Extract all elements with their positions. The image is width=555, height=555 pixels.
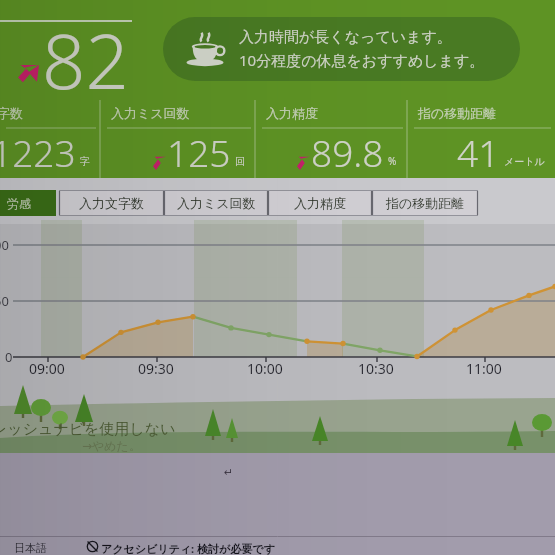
staticText: 09:30 <box>138 359 174 378</box>
staticText: 11:00 <box>466 359 502 378</box>
staticText: →やめた。 <box>82 438 141 453</box>
button[interactable]: 指の移動距離 <box>372 190 478 216</box>
staticText: 41 <box>457 127 500 177</box>
staticText: 字数 <box>0 105 23 121</box>
staticText: 89.8 <box>311 127 384 177</box>
staticText: 1223 <box>0 127 76 177</box>
staticText: 00 <box>0 236 9 254</box>
other: Accessibility <box>86 540 99 553</box>
staticText: 10分程度の休息をおすすめします。 <box>239 50 485 70</box>
button[interactable]: アクセシビリティ: 検討が必要です <box>101 541 275 555</box>
staticText: レッシュナビを使用しない <box>0 420 176 439</box>
button[interactable]: 入力ミス回数 <box>164 190 268 216</box>
staticText: 入力ミス回数 <box>111 105 190 121</box>
staticText: 82 <box>42 8 129 112</box>
staticText: 回 <box>235 155 245 168</box>
button[interactable]: 入力精度 <box>268 190 372 216</box>
staticText: 入力精度 <box>294 195 346 211</box>
staticText: 日本語 <box>14 541 47 555</box>
button[interactable]: 入力時間が長くなっています。 <box>163 17 520 81</box>
staticText: 0 <box>5 348 13 366</box>
staticText: 10:30 <box>358 359 394 378</box>
staticText: ↵ <box>224 466 234 479</box>
staticText: 入力文字数 <box>79 195 144 211</box>
button[interactable]: 入力文字数 <box>59 190 164 216</box>
staticText: 入力ミス回数 <box>177 195 256 211</box>
staticText: 50 <box>0 292 9 310</box>
staticText: 10:00 <box>247 359 283 378</box>
staticText: 指の移動距離 <box>386 195 465 211</box>
staticText: 入力精度 <box>266 105 318 121</box>
button[interactable]: 労感 <box>0 190 56 216</box>
staticText: 字 <box>80 155 90 168</box>
staticText: 入力時間が長くなっています。 <box>239 28 452 47</box>
staticText: 労感 <box>7 196 31 211</box>
staticText: 09:00 <box>29 359 65 378</box>
staticText: 指の移動距離 <box>418 105 497 121</box>
staticText: 125 <box>167 127 231 177</box>
staticText: メートル <box>504 155 545 168</box>
staticText: % <box>388 154 397 168</box>
